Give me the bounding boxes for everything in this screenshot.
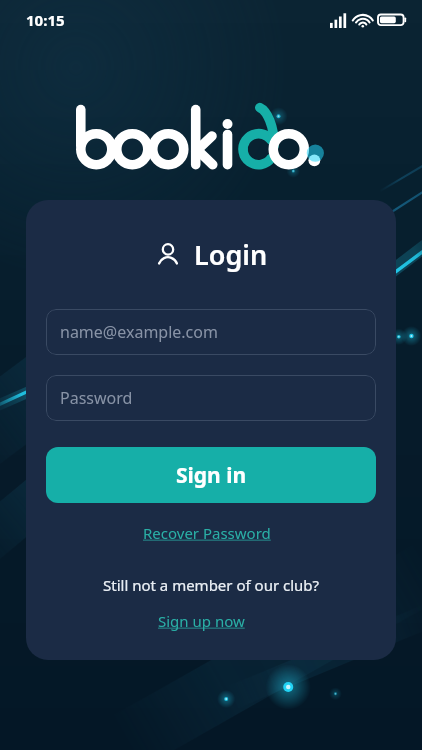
staticText: Still not a member of our club? [103,575,320,595]
staticText: Recover Password [143,523,279,543]
staticText: Login [194,236,268,273]
button[interactable]: Sign up now [148,607,275,635]
button[interactable]: Password [46,375,376,421]
staticText: name@example.com [60,321,218,343]
staticText: 10:15 [26,10,65,30]
staticText: Sign up now [158,611,265,631]
staticText: Password [60,387,133,409]
button[interactable]: Sign in [46,447,376,503]
staticText: Sign in [176,461,247,490]
button[interactable]: name@example.com [46,309,376,355]
button[interactable]: Recover Password [133,519,289,547]
